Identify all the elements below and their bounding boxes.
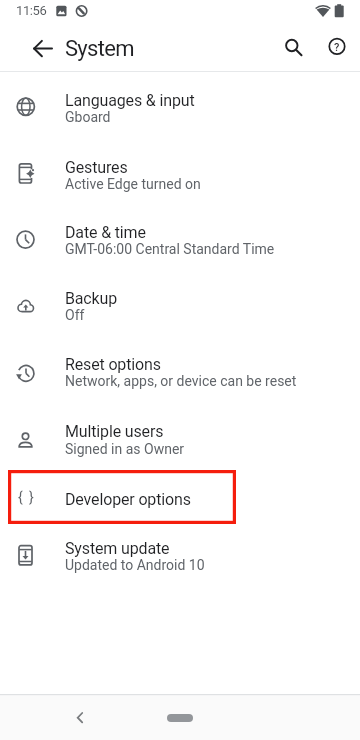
staticText: Gboard xyxy=(65,109,111,125)
staticText: Reset options xyxy=(65,355,161,374)
button[interactable]: Developer options xyxy=(0,470,360,524)
button[interactable]: System update xyxy=(0,524,360,591)
staticText: System xyxy=(65,36,134,62)
button[interactable]: Backup xyxy=(0,270,360,336)
staticText: Gestures xyxy=(65,158,128,177)
button[interactable]: Date & time xyxy=(0,204,360,270)
staticText: System update xyxy=(65,539,170,558)
staticText: Off xyxy=(65,307,85,323)
button[interactable] xyxy=(156,695,204,740)
staticText: Active Edge turned on xyxy=(65,176,201,192)
staticText: Date & time xyxy=(65,223,146,242)
staticText: Signed in as Owner xyxy=(65,441,185,457)
staticText: Network, apps, or device can be reset xyxy=(65,373,297,389)
button[interactable] xyxy=(318,27,356,65)
staticText: Backup xyxy=(65,289,118,308)
staticText: } xyxy=(29,489,34,505)
button[interactable] xyxy=(24,30,62,68)
staticText: Multiple users xyxy=(65,422,164,441)
button[interactable]: Reset options xyxy=(0,336,360,402)
staticText: Updated to Android 10 xyxy=(65,557,205,573)
button[interactable]: Gestures xyxy=(0,138,360,204)
button[interactable]: Languages & input xyxy=(0,72,360,138)
button[interactable] xyxy=(273,27,311,65)
staticText: Developer options xyxy=(65,490,191,509)
staticText: ? xyxy=(334,41,340,54)
button[interactable] xyxy=(56,695,104,740)
button[interactable]: Multiple users xyxy=(0,402,360,470)
staticText: Languages & input xyxy=(65,91,195,110)
staticText: 11:56 xyxy=(16,3,47,18)
staticText: { xyxy=(18,489,23,505)
staticText: GMT-06:00 Central Standard Time xyxy=(65,241,275,257)
